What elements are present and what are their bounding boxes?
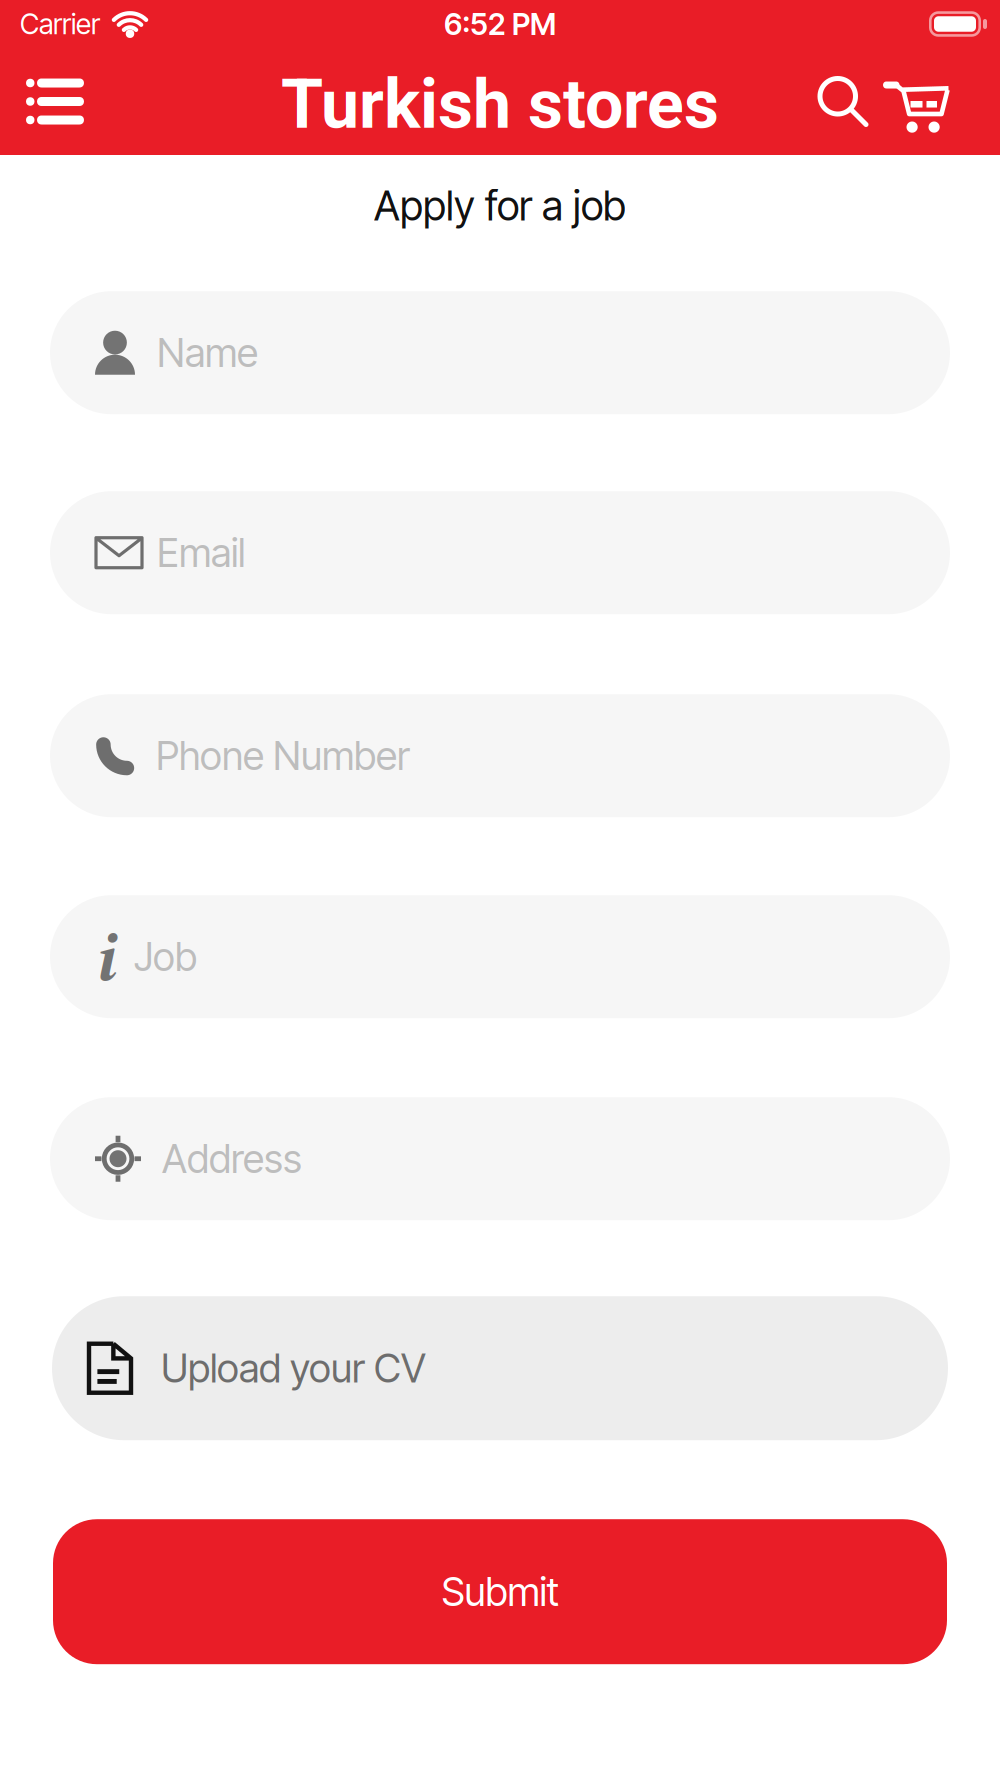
button[interactable]: Menu (26, 78, 84, 124)
staticText: Submit (441, 1568, 558, 1615)
button[interactable]: Address (50, 1097, 950, 1220)
button[interactable]: Submit (53, 1519, 947, 1664)
button[interactable]: Name (50, 291, 950, 414)
button[interactable]: Cart (883, 75, 949, 127)
button[interactable]: i (50, 895, 950, 1018)
staticText: Name (157, 329, 258, 376)
staticText: Carrier (20, 7, 100, 41)
staticText: Email (157, 529, 245, 576)
button[interactable]: Phone Number (50, 694, 950, 817)
staticText: Job (134, 933, 197, 980)
button[interactable]: Search (819, 77, 867, 125)
button[interactable]: Email (50, 491, 950, 614)
staticText: i (97, 911, 117, 1002)
staticText: Turkish stores (281, 65, 719, 144)
staticText: 6:52 PM (444, 6, 556, 42)
staticText: Phone Number (156, 732, 410, 779)
staticText: Upload your CV (161, 1344, 426, 1392)
staticText: Address (162, 1135, 302, 1182)
button[interactable]: Upload your CV (52, 1296, 948, 1440)
staticText: Apply for a job (374, 181, 626, 230)
